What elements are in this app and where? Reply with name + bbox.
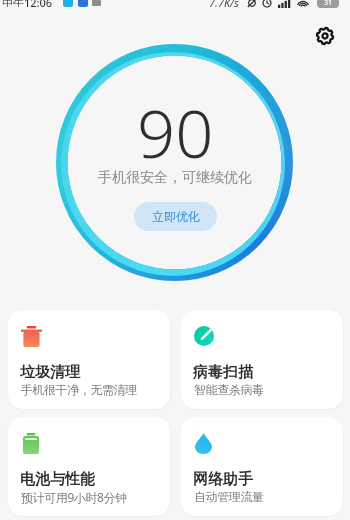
staticText: 90: [137, 86, 214, 177]
staticText: 自动管理流量: [194, 489, 264, 504]
staticText: 智能查杀病毒: [194, 382, 264, 397]
staticText: 预计可用9小时8分钟: [21, 489, 127, 505]
staticText: 网络助手: [193, 470, 253, 489]
button[interactable]: 病毒扫描: [181, 310, 343, 409]
staticText: 病毒扫描: [193, 363, 253, 382]
staticText: 7.7K/s: [209, 0, 239, 7]
staticText: 立即优化: [152, 209, 200, 224]
staticText: 31: [324, 0, 333, 8]
staticText: 电池与性能: [20, 470, 95, 489]
button[interactable]: Settings: [310, 21, 340, 51]
staticText: 手机很安全，可继续优化: [98, 169, 252, 187]
staticText: 手机很干净，无需清理: [21, 382, 137, 397]
staticText: 垃圾清理: [20, 363, 80, 382]
button[interactable]: 立即优化: [134, 202, 217, 231]
button[interactable]: 电池与性能: [8, 417, 170, 516]
button[interactable]: 垃圾清理: [8, 310, 170, 409]
staticText: 中午12:06: [2, 0, 53, 7]
button[interactable]: 网络助手: [181, 417, 343, 516]
